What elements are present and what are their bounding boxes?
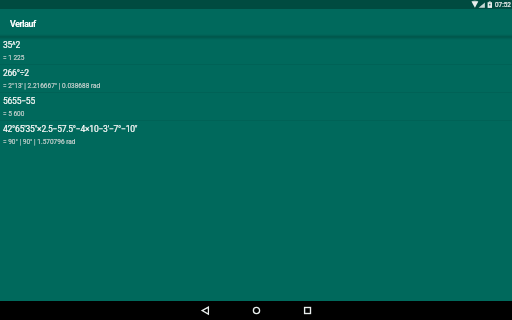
button[interactable]: 5655−55 (0, 92, 512, 120)
staticText: 07:52 (495, 1, 511, 9)
button[interactable]: Home (239, 301, 273, 320)
staticText: 42°65'35"×2.5−57.5°−4×10−3'−7°−10" (3, 124, 138, 134)
staticText: = 5 600 (3, 110, 25, 118)
staticText: Verlauf (10, 19, 36, 29)
staticText: = 90° | 90° | 1.570796 rad (3, 138, 76, 146)
staticText: 35^2 (3, 40, 21, 50)
button[interactable]: Recents (290, 301, 324, 320)
button[interactable]: Back (188, 301, 222, 320)
button[interactable]: 266°÷2 (0, 64, 512, 92)
button[interactable]: 42°65'35"×2.5−57.5°−4×10−3'−7°−10" (0, 120, 512, 148)
staticText: = 2°13' | 2.216667° | 0.038688 rad (3, 82, 101, 90)
button[interactable]: 35^2 (0, 36, 512, 64)
staticText: 266°÷2 (3, 68, 29, 78)
staticText: = 1 225 (3, 54, 25, 62)
staticText: 5655−55 (3, 96, 35, 106)
other: Status icons (0, 0, 512, 9)
